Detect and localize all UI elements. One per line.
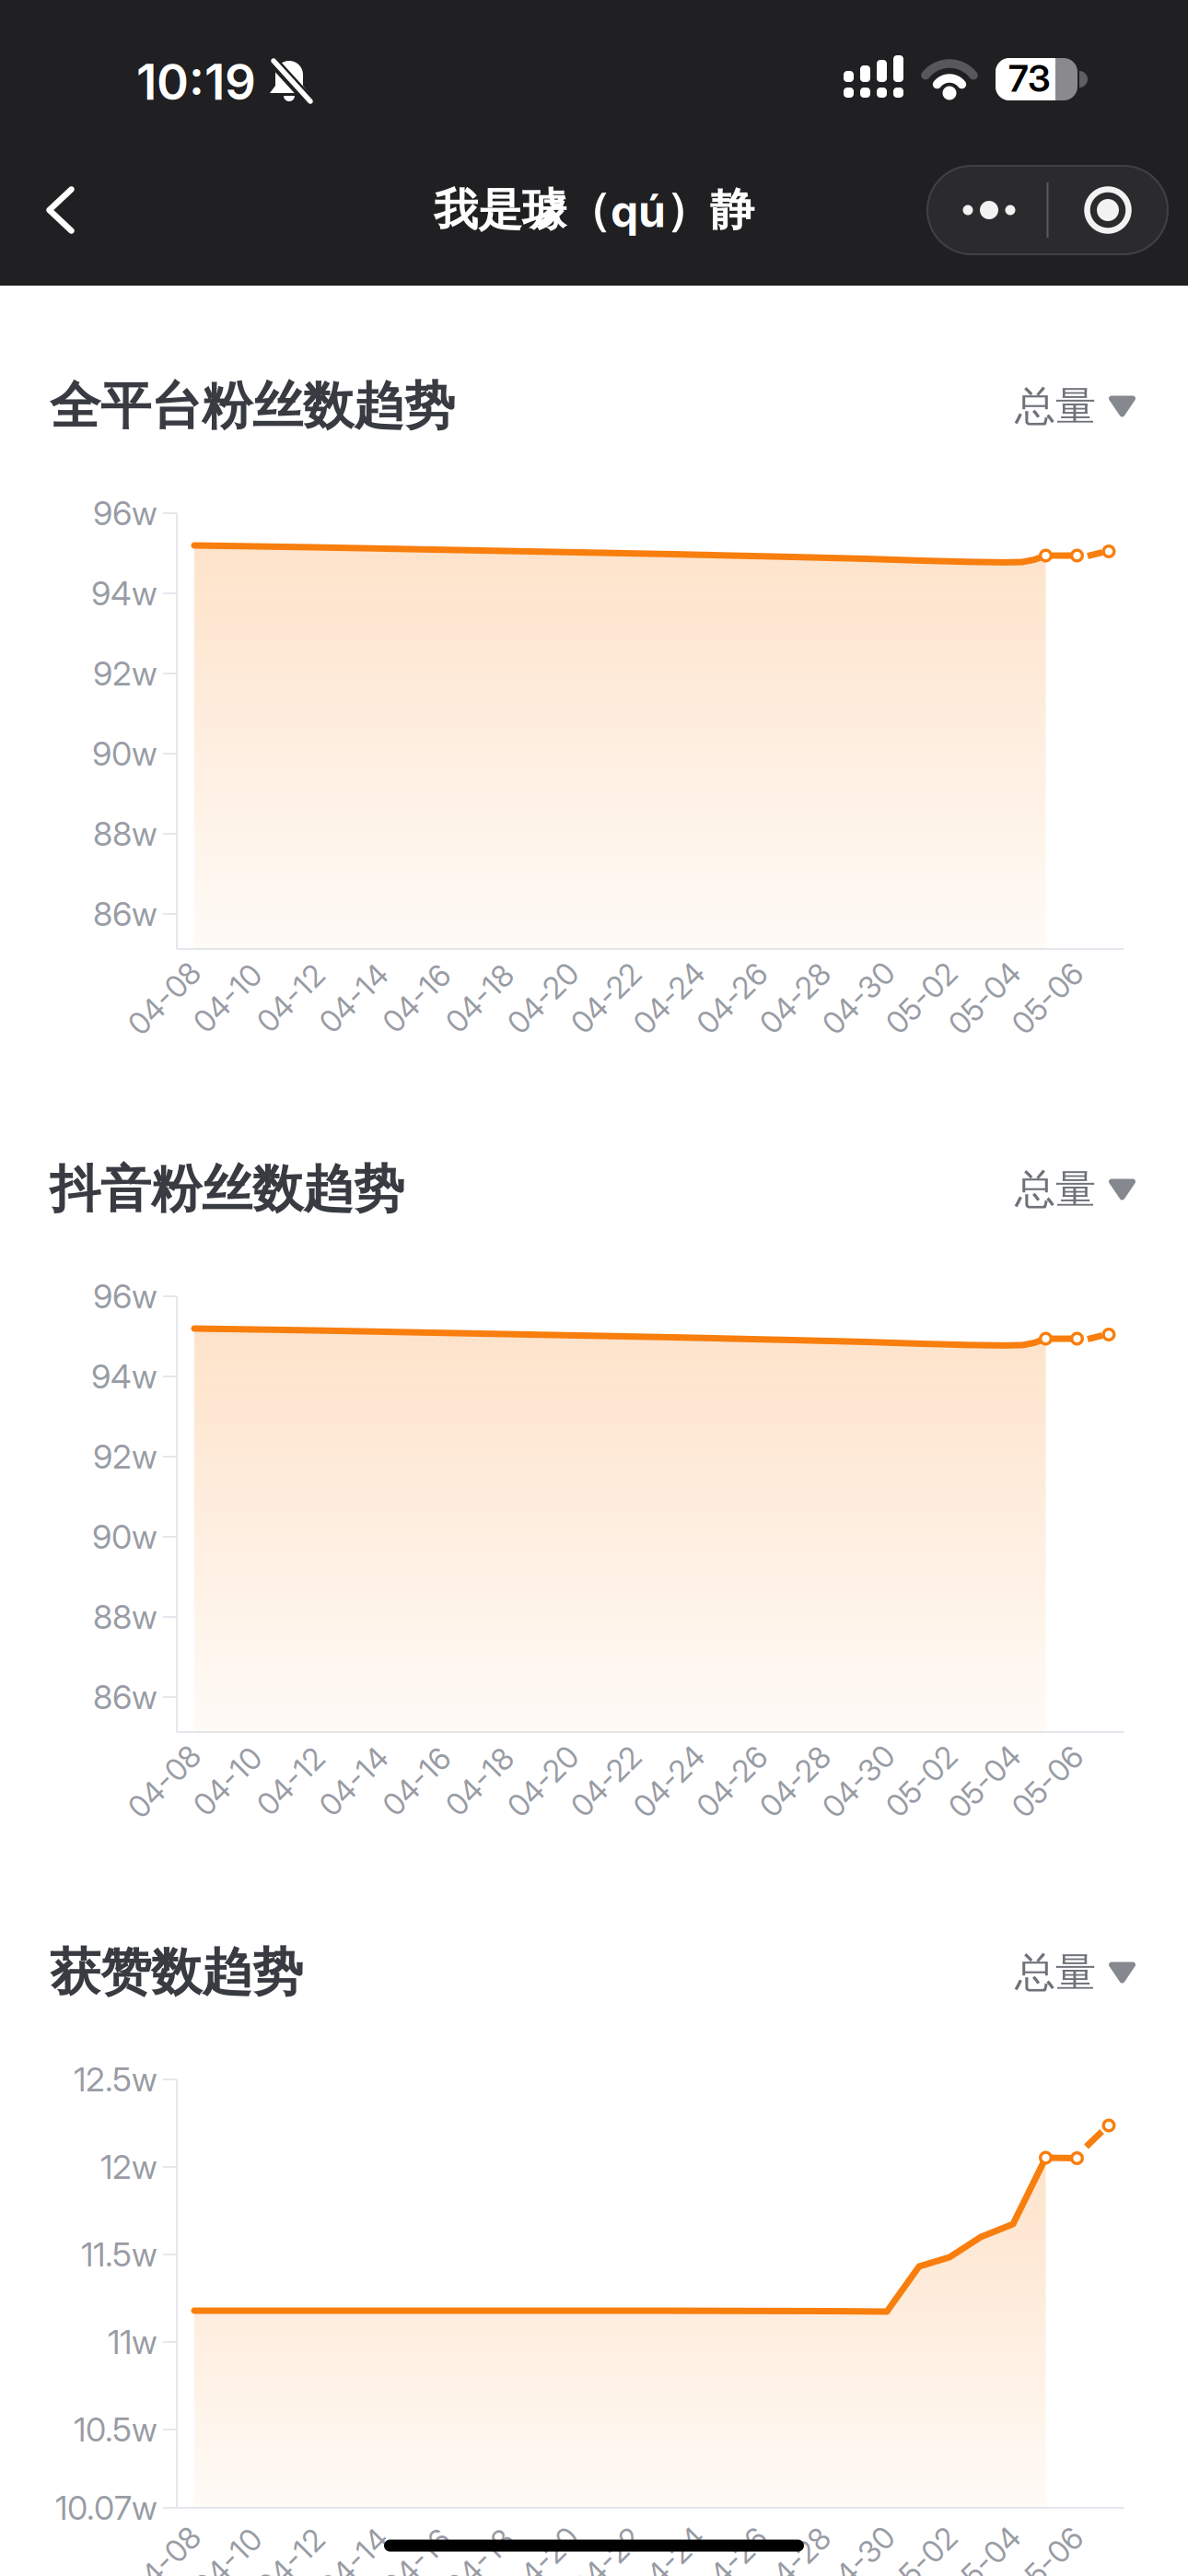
staticText: 04-22 (564, 2544, 648, 2576)
staticText: 05-04 (941, 2544, 1028, 2576)
staticText: 04-30 (815, 2544, 902, 2576)
staticText: 04-18 (439, 1763, 521, 1800)
staticText: 04-20 (500, 1763, 586, 1800)
staticText: 94w (91, 1356, 157, 1397)
staticText: 04-10 (186, 980, 268, 1017)
staticText: 05-04 (941, 980, 1028, 1017)
staticText: 04-12 (250, 2544, 331, 2576)
staticText: 04-10 (186, 2544, 268, 2576)
staticText: 96w (93, 1276, 157, 1316)
staticText: 总量 (1015, 1947, 1096, 1998)
staticText: 05-04 (941, 1763, 1028, 1800)
staticText: 04-26 (689, 980, 775, 1017)
staticText: 04-22 (564, 1763, 648, 1800)
staticText: 90w (92, 734, 157, 774)
staticText: 05-02 (879, 2544, 964, 2576)
staticText: 05-06 (1004, 2544, 1091, 2576)
staticText: 04-18 (439, 980, 521, 1017)
staticText: 90w (92, 1517, 157, 1557)
staticText: 我是璩（qú）静 (434, 182, 754, 238)
staticText: 04-24 (626, 980, 712, 1017)
staticText: 04-28 (752, 980, 838, 1017)
staticText: 04-14 (312, 2544, 395, 2576)
staticText: 04-10 (186, 1763, 268, 1800)
staticText: 11w (108, 2322, 157, 2362)
button[interactable]: Back (30, 170, 92, 250)
staticText: 04-30 (815, 1763, 902, 1800)
staticText: 04-18 (439, 2544, 521, 2576)
staticText: 04-14 (312, 980, 395, 1017)
staticText: 86w (93, 1677, 157, 1717)
staticText: 12.5w (74, 2059, 157, 2099)
staticText: 92w (93, 653, 157, 694)
staticText: 92w (93, 1437, 157, 1477)
staticText: 04-20 (500, 980, 586, 1017)
staticText: 10.5w (74, 2409, 157, 2450)
staticText: 86w (93, 894, 157, 934)
staticText: 04-28 (752, 1763, 838, 1800)
staticText: 04-16 (376, 1763, 458, 1800)
staticText: 04-26 (689, 1763, 775, 1800)
staticText: 04-12 (250, 980, 331, 1017)
staticText: 05-02 (879, 1763, 964, 1800)
staticText: 04-12 (250, 1763, 331, 1800)
button[interactable]: More (942, 166, 1036, 254)
staticText: 04-30 (815, 980, 902, 1017)
button[interactable]: 总量 (1015, 1947, 1133, 1998)
staticText: 总量 (1015, 381, 1096, 432)
button[interactable]: 总量 (1015, 381, 1133, 432)
staticText: 04-20 (500, 2544, 586, 2576)
staticText: 04-22 (564, 980, 648, 1017)
staticText: 04-28 (752, 2544, 838, 2576)
staticText: 04-16 (376, 2544, 458, 2576)
staticText: 12w (100, 2147, 157, 2187)
staticText: 73 (1008, 56, 1051, 101)
staticText: 获赞数趋势 (50, 1941, 303, 2005)
staticText: 04-08 (120, 980, 209, 1017)
staticText: 94w (91, 573, 157, 613)
staticText: 10.07w (55, 2488, 157, 2528)
staticText: 05-02 (879, 980, 964, 1017)
staticText: 04-26 (689, 2544, 775, 2576)
staticText: 04-14 (312, 1763, 395, 1800)
staticText: 抖音粉丝数趋势 (50, 1158, 404, 1221)
staticText: 11.5w (81, 2234, 157, 2275)
staticText: 88w (93, 1597, 157, 1637)
staticText: 05-06 (1004, 1763, 1091, 1800)
button[interactable]: 总量 (1015, 1164, 1133, 1215)
button[interactable]: Close (1062, 166, 1154, 254)
staticText: 04-16 (376, 980, 458, 1017)
staticText: 04-24 (626, 1763, 712, 1800)
staticText: 05-06 (1004, 980, 1091, 1017)
staticText: 全平台粉丝数趋势 (50, 374, 455, 438)
staticText: 88w (93, 814, 157, 854)
staticText: 04-24 (626, 2544, 712, 2576)
staticText: 04-08 (120, 2544, 209, 2576)
staticText: 04-08 (120, 1763, 209, 1800)
staticText: 总量 (1015, 1164, 1096, 1215)
staticText: 10:19 (136, 52, 256, 111)
staticText: 96w (93, 493, 157, 533)
